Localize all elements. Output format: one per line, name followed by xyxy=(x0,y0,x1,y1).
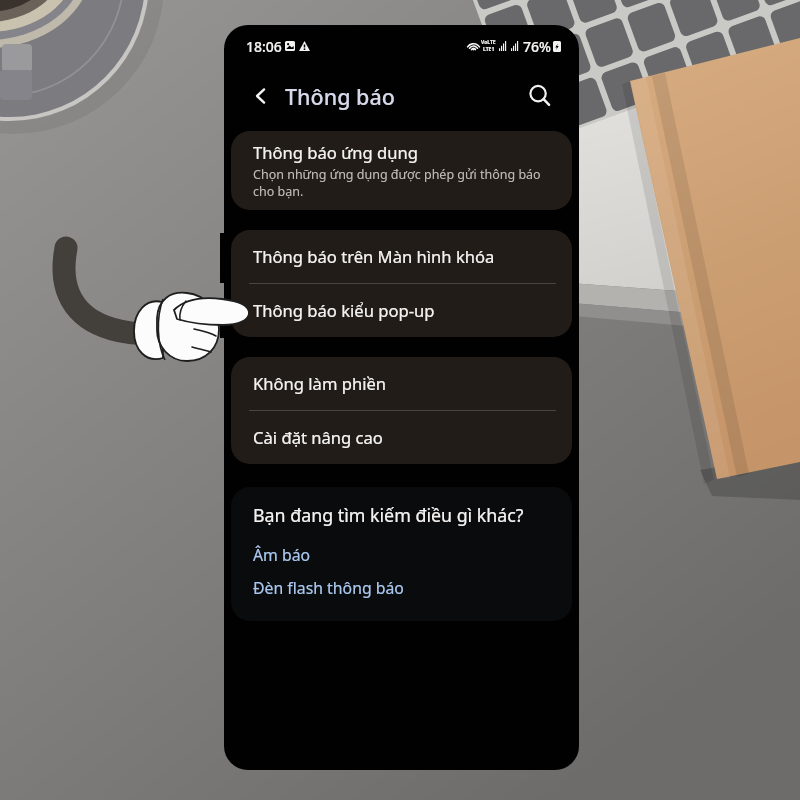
staticText: VoLTE xyxy=(481,39,496,46)
staticText: 18:06 xyxy=(246,37,282,56)
staticText: Không làm phiền xyxy=(253,372,387,395)
button[interactable]: Không làm phiền xyxy=(231,357,572,410)
staticText: Thông báo xyxy=(285,82,395,111)
button[interactable]: Cài đặt nâng cao xyxy=(231,411,572,464)
staticText: 76% xyxy=(523,37,551,56)
button[interactable]: Âm báo xyxy=(253,544,556,566)
button[interactable]: Back xyxy=(248,83,274,109)
button[interactable]: Thông báo ứng dụng xyxy=(231,131,572,210)
staticText: Chọn những ứng dụng được phép gửi thông … xyxy=(253,166,558,199)
staticText: Âm báo xyxy=(253,544,311,566)
staticText: Thông báo trên Màn hình khóa xyxy=(253,245,495,268)
button[interactable]: Thông báo kiểu pop-up xyxy=(231,284,572,337)
staticText: Thông báo kiểu pop-up xyxy=(253,299,435,322)
staticText: Thông báo ứng dụng xyxy=(253,141,419,164)
staticText: LTE1 xyxy=(483,46,495,53)
button[interactable]: Thông báo trên Màn hình khóa xyxy=(231,230,572,283)
staticText: Đèn flash thông báo xyxy=(253,577,404,599)
button[interactable]: Đèn flash thông báo xyxy=(253,577,556,599)
button[interactable]: Search xyxy=(525,81,555,111)
staticText: Bạn đang tìm kiếm điều gì khác? xyxy=(253,503,524,527)
staticText: Cài đặt nâng cao xyxy=(253,426,383,449)
